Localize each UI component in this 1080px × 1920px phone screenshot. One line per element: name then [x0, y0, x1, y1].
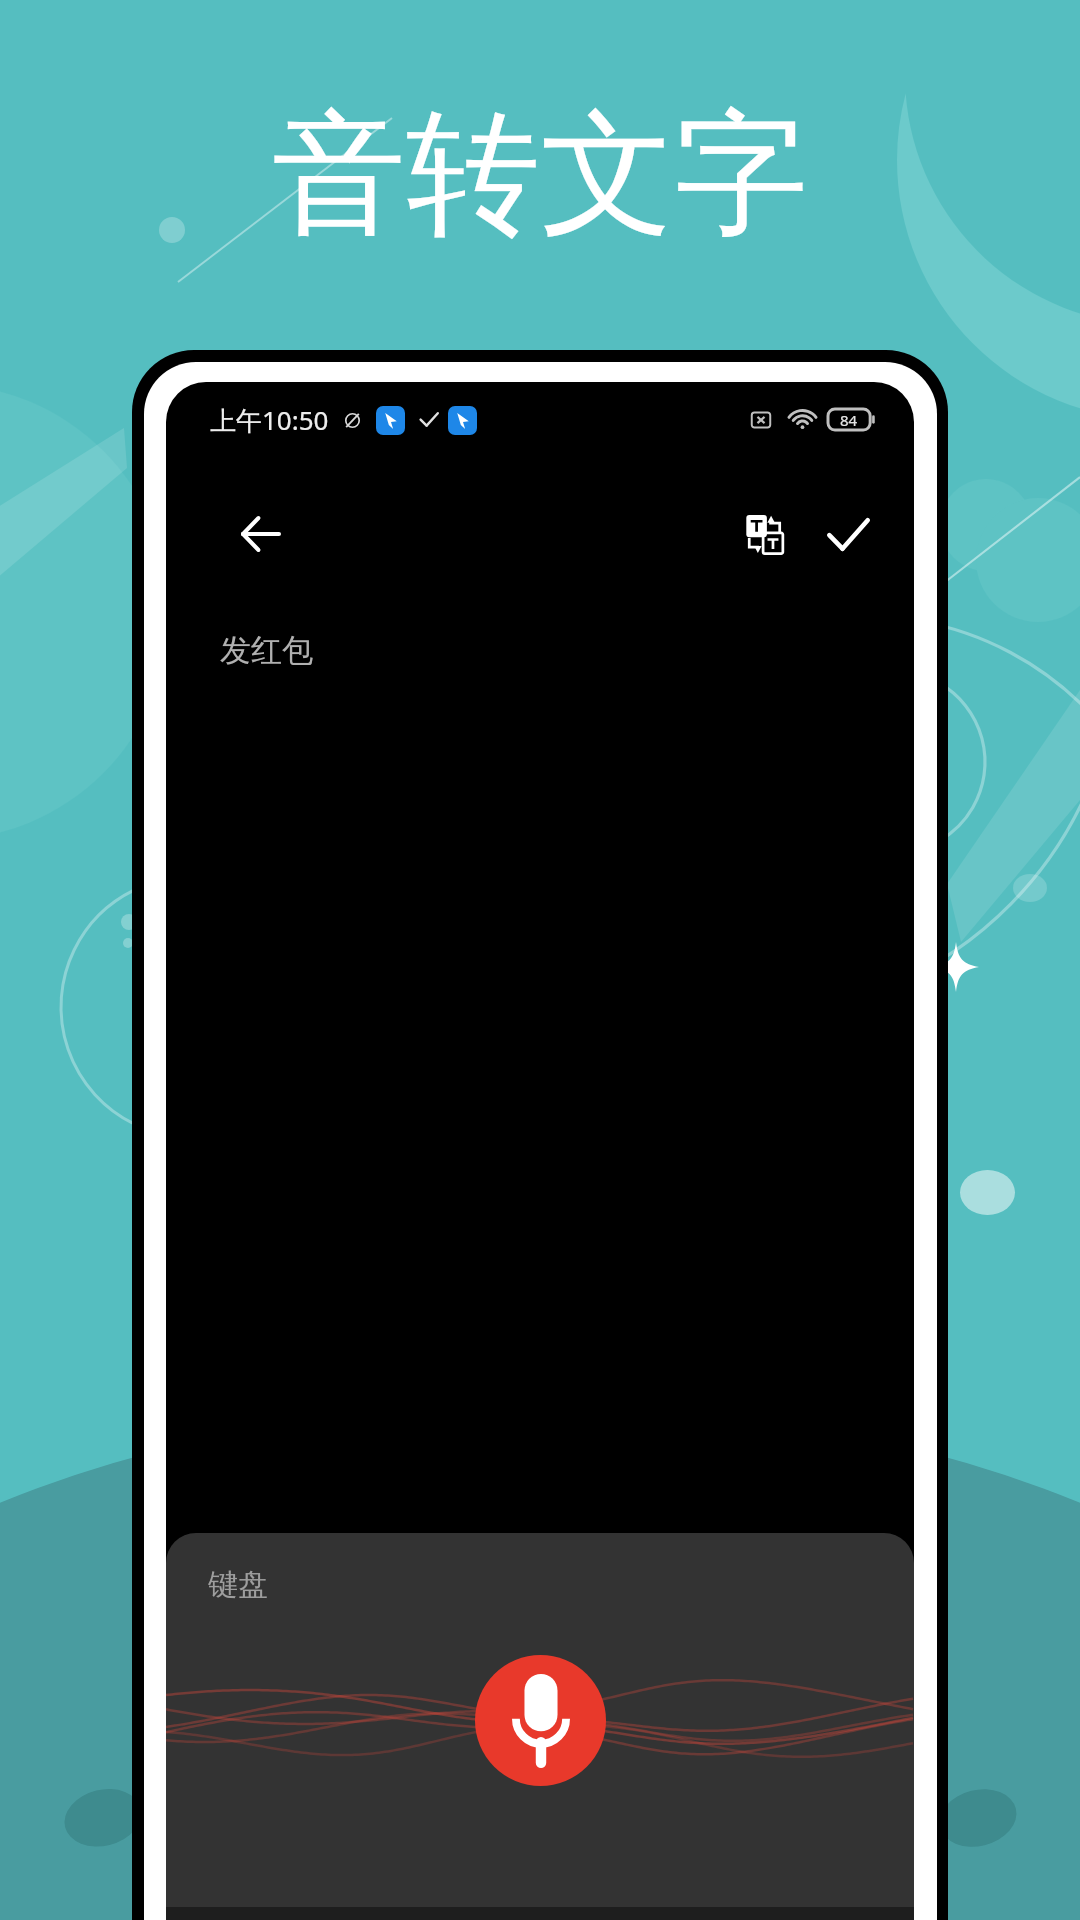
button[interactable]: Done [812, 498, 884, 570]
staticText: 84 [840, 410, 858, 430]
staticText: 发红包 [220, 631, 313, 670]
button[interactable]: 键盘 [208, 1566, 268, 1604]
button[interactable]: Convert text [730, 499, 800, 569]
button[interactable]: Back [221, 495, 299, 573]
staticText: 上午10:50 [210, 402, 329, 438]
staticText: 音转文字 [272, 91, 808, 260]
button[interactable]: Record voice [475, 1655, 606, 1786]
